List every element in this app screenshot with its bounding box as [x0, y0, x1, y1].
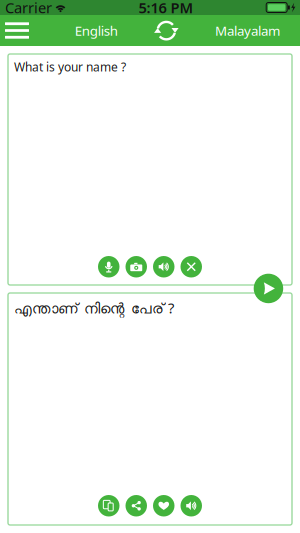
- button[interactable]: Malayalam: [209, 15, 286, 46]
- button[interactable]: Menu: [0, 15, 39, 46]
- staticText: എന്താണ് നിന്റെ പേര് ?: [14, 298, 174, 317]
- button[interactable]: English: [69, 15, 124, 46]
- staticText: English: [75, 22, 118, 39]
- staticText: Malayalam: [215, 22, 280, 39]
- button[interactable]: Camera: [125, 256, 147, 277]
- button[interactable]: Copy: [98, 495, 119, 516]
- button[interactable]: Voice input: [98, 256, 119, 277]
- button[interactable]: Swap languages: [153, 15, 179, 46]
- staticText: 5:16 PM: [139, 0, 194, 17]
- button[interactable]: Share: [125, 495, 147, 516]
- button[interactable]: Speak: [180, 495, 202, 516]
- button[interactable]: Translate: [254, 274, 283, 303]
- staticText: Carrier: [5, 0, 52, 17]
- button[interactable]: Clear: [180, 256, 202, 277]
- button[interactable]: Add to favourites: [153, 495, 174, 516]
- staticText: What is your name ?: [14, 59, 126, 75]
- button[interactable]: Speak: [153, 256, 174, 277]
